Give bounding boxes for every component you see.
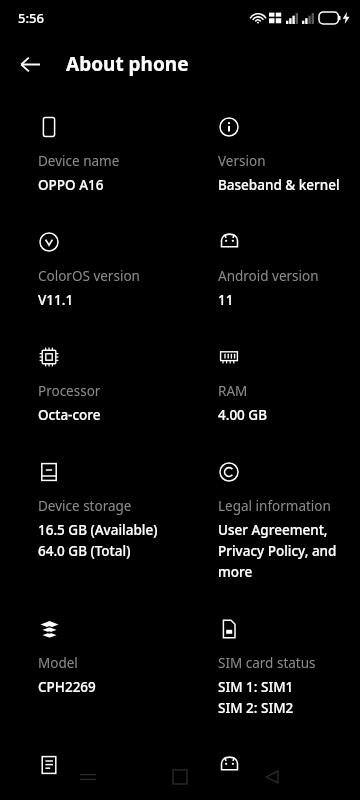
- staticText: 4.00 GB: [218, 406, 267, 424]
- button[interactable]: Version: [180, 106, 360, 221]
- staticText: ColorOS version: [38, 267, 140, 285]
- button[interactable]: Back: [10, 44, 50, 84]
- button[interactable]: Regulatory: [180, 744, 360, 800]
- staticText: Legal information: [218, 497, 331, 515]
- button[interactable]: Processor: [0, 336, 180, 451]
- staticText: OPPO A16: [38, 176, 104, 194]
- staticText: Version: [218, 152, 266, 170]
- button[interactable]: Legal information: [180, 451, 360, 608]
- button[interactable]: Android version: [180, 221, 360, 336]
- button[interactable]: Status: [0, 744, 180, 800]
- staticText: 16.5 GB (Available): [38, 521, 158, 539]
- button[interactable]: Back: [244, 754, 300, 800]
- staticText: Octa-core: [38, 406, 101, 424]
- staticText: About phone: [66, 51, 189, 77]
- button[interactable]: Device storage: [0, 451, 180, 587]
- staticText: 11: [218, 291, 234, 309]
- staticText: CPH2269: [38, 678, 96, 696]
- staticText: Model: [38, 654, 78, 672]
- staticText: 64.0 GB (Total): [38, 542, 131, 560]
- button[interactable]: Recents: [60, 754, 116, 800]
- staticText: SIM 2: SIM2: [218, 699, 294, 717]
- staticText: Processor: [38, 382, 101, 400]
- staticText: V11.1: [38, 291, 74, 309]
- button[interactable]: SIM card status: [180, 608, 360, 744]
- staticText: Baseband & kernel: [218, 176, 340, 194]
- staticText: Device storage: [38, 497, 132, 515]
- button[interactable]: Device name: [0, 106, 180, 221]
- button[interactable]: RAM: [180, 336, 360, 451]
- button[interactable]: Home: [152, 754, 208, 800]
- button[interactable]: ColorOS version: [0, 221, 180, 336]
- staticText: SIM 1: SIM1: [218, 678, 294, 696]
- staticText: Android version: [218, 267, 319, 285]
- staticText: SIM card status: [218, 654, 316, 672]
- staticText: more: [218, 563, 253, 581]
- staticText: 5:56: [18, 9, 44, 27]
- staticText: RAM: [218, 382, 248, 400]
- staticText: Privacy Policy, and: [218, 542, 337, 560]
- button[interactable]: Model: [0, 608, 180, 723]
- staticText: Device name: [38, 152, 120, 170]
- staticText: User Agreement,: [218, 521, 328, 539]
